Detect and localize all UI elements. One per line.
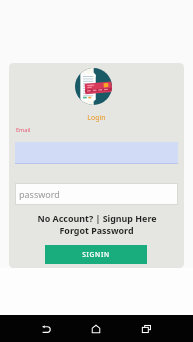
- staticText: Email: [16, 126, 31, 134]
- button[interactable]: Forgot Password: [59, 224, 134, 236]
- button[interactable]: Recent apps: [121, 315, 171, 342]
- button[interactable]: password: [16, 184, 177, 204]
- staticText: password: [19, 188, 60, 200]
- button[interactable]: Home: [71, 315, 121, 342]
- staticText: SIGNIN: [82, 250, 110, 259]
- button[interactable]: SIGNIN: [45, 245, 147, 264]
- button[interactable]: No Account? | Signup Here: [37, 212, 157, 224]
- button[interactable]: [15, 142, 178, 164]
- button[interactable]: Back: [22, 315, 71, 342]
- staticText: Login: [87, 113, 106, 123]
